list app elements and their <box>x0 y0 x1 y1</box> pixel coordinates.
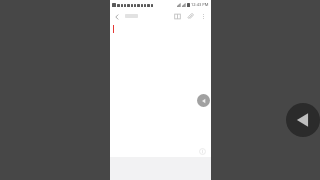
button[interactable]: Previous page <box>197 94 210 107</box>
button[interactable]: Back <box>286 103 320 137</box>
button[interactable]: Attach <box>184 10 197 23</box>
button[interactable]: View mode <box>171 10 184 23</box>
button[interactable]: Back <box>110 10 123 23</box>
button[interactable]: More options <box>197 10 210 23</box>
staticText: 12:43 PM <box>191 2 209 7</box>
